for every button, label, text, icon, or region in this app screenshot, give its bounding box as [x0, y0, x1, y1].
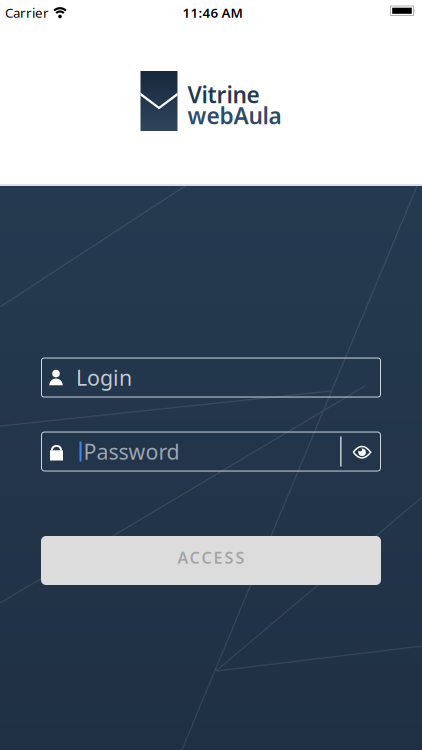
- staticText: 11:46 AM: [182, 4, 242, 21]
- staticText: Carrier: [5, 4, 49, 21]
- button[interactable]: ACCESS: [41, 536, 381, 585]
- staticText: ACCESS: [177, 547, 244, 568]
- button[interactable]: Login: [41, 358, 380, 397]
- staticText: Login: [76, 363, 132, 392]
- button[interactable]: Show password: [341, 444, 380, 459]
- staticText: Password: [83, 437, 179, 466]
- staticText: webAula: [187, 100, 281, 131]
- staticText: Vitrine: [187, 79, 259, 109]
- button[interactable]: Password: [41, 437, 340, 466]
